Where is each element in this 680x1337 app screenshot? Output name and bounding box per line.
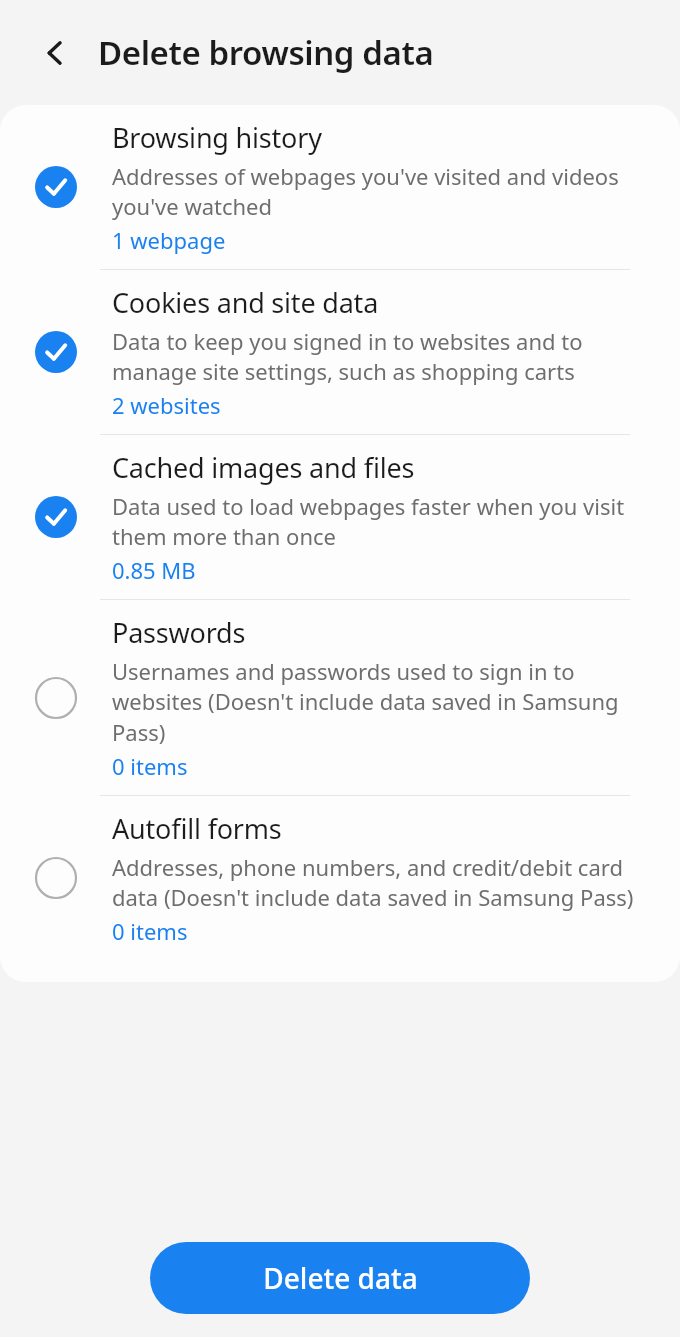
staticText: Passwords: [112, 614, 246, 651]
staticText: Data to keep you signed in to websites a…: [112, 326, 636, 387]
staticText: Data used to load webpages faster when y…: [112, 491, 636, 552]
other: Selected: [35, 331, 77, 373]
button[interactable]: Selected: [0, 435, 680, 599]
staticText: 0.85 MB: [112, 555, 196, 585]
button[interactable]: Not selected: [0, 796, 680, 960]
staticText: Cookies and site data: [112, 284, 379, 321]
other: Not selected: [35, 857, 77, 899]
button[interactable]: Back: [22, 19, 90, 87]
button[interactable]: Not selected: [0, 600, 680, 795]
staticText: Addresses, phone numbers, and credit/deb…: [112, 852, 636, 913]
button[interactable]: Selected: [0, 270, 680, 434]
staticText: 0 items: [112, 751, 188, 781]
other: Selected: [35, 496, 77, 538]
staticText: Addresses of webpages you've visited and…: [112, 161, 636, 222]
staticText: Autofill forms: [112, 810, 282, 847]
staticText: Delete data: [263, 1259, 418, 1297]
other: Not selected: [35, 677, 77, 719]
staticText: 1 webpage: [112, 225, 226, 255]
button[interactable]: Selected: [0, 105, 680, 269]
staticText: Delete browsing data: [98, 30, 434, 75]
staticText: Usernames and passwords used to sign in …: [112, 656, 636, 748]
staticText: 0 items: [112, 916, 188, 946]
staticText: Browsing history: [112, 119, 322, 156]
button[interactable]: Delete data: [150, 1242, 530, 1314]
staticText: 2 websites: [112, 390, 221, 420]
other: Selected: [35, 166, 77, 208]
staticText: Cached images and files: [112, 449, 415, 486]
